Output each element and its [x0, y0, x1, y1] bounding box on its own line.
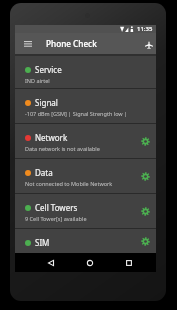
staticText: Cell Towers [35, 202, 78, 213]
button[interactable]: Home [80, 253, 100, 272]
staticText: SIM [35, 237, 50, 248]
button[interactable]: Data [15, 159, 156, 193]
staticText: Service [35, 64, 62, 75]
staticText: -107 dBm [GSM] | Signal Strength low | [25, 110, 128, 117]
button[interactable]: Back [41, 253, 61, 272]
staticText: Network [35, 132, 68, 143]
button[interactable]: SIM [15, 229, 156, 253]
staticText: Data network is not available [25, 145, 100, 152]
button[interactable]: Settings [138, 234, 152, 248]
button[interactable]: Settings [138, 204, 152, 218]
staticText: Phone Check [46, 38, 97, 49]
button[interactable]: Signal [15, 89, 156, 123]
button[interactable]: Service [15, 56, 156, 88]
button[interactable]: Settings [138, 134, 152, 148]
staticText: IND airtel [25, 77, 50, 84]
staticText: Data [35, 167, 53, 178]
button[interactable]: Network [15, 124, 156, 158]
staticText: 11:35 [137, 25, 153, 33]
staticText: Signal [35, 97, 58, 108]
staticText: Not connected to Mobile Network [25, 180, 113, 187]
button[interactable]: Recents [119, 253, 139, 272]
staticText: 9 Cell Tower[s] available [25, 215, 87, 222]
button[interactable]: Airplane mode [135, 33, 156, 54]
button[interactable]: Cell Towers [15, 194, 156, 228]
button[interactable]: Settings [138, 169, 152, 183]
button[interactable]: Open navigation menu [15, 33, 41, 54]
